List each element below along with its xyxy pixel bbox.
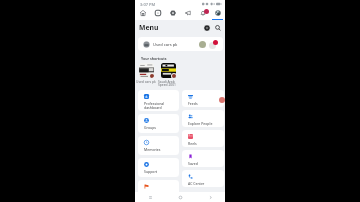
staticText: Used cars pk xyxy=(153,42,178,47)
button[interactable]: Used cars pk xyxy=(139,63,154,83)
button[interactable]: Notifications xyxy=(180,8,195,20)
button[interactable]: Groups xyxy=(138,114,179,133)
button[interactable]: Feeds xyxy=(182,90,224,107)
staticText: Reels xyxy=(188,141,197,146)
button[interactable]: Home xyxy=(135,8,150,20)
staticText: Support xyxy=(144,169,158,174)
staticText: AC Center xyxy=(188,181,205,186)
button[interactable]: Support xyxy=(138,158,179,177)
button[interactable]: Switch profile xyxy=(199,41,206,48)
staticText: Menu xyxy=(139,23,159,32)
staticText: Saved xyxy=(188,161,198,166)
button[interactable]: Home xyxy=(165,192,195,202)
button[interactable]: Marketplace xyxy=(165,8,180,20)
button[interactable]: Profile menu xyxy=(209,40,218,49)
button[interactable]: Back xyxy=(195,192,225,202)
staticText: 3:07 PM xyxy=(140,2,156,7)
staticText: Professional dashboard xyxy=(144,101,165,110)
button[interactable]: Reels xyxy=(182,130,224,147)
staticText: Feeds xyxy=(188,101,198,106)
staticText: Memories xyxy=(144,147,161,152)
staticText: Your shortcuts xyxy=(141,56,167,61)
staticText: Explore People xyxy=(188,121,213,126)
button[interactable]: Saved xyxy=(182,150,224,167)
button[interactable]: Settings xyxy=(203,24,211,32)
button[interactable]: Saudi Arab Speed 2001 xyxy=(161,63,176,87)
button[interactable]: AC Center xyxy=(182,170,224,187)
staticText: Groups xyxy=(144,125,156,130)
staticText: Saudi Arab Speed 2001 xyxy=(158,79,179,87)
button[interactable]: Recents xyxy=(135,192,165,202)
button[interactable]: Memories xyxy=(138,136,179,155)
button[interactable]: Professional dashboard xyxy=(138,90,179,111)
button[interactable]: Search xyxy=(214,24,222,32)
button[interactable]: Explore People xyxy=(182,110,224,127)
button[interactable]: Pages xyxy=(138,180,179,199)
button[interactable]: Profile xyxy=(210,8,225,20)
button[interactable]: Used cars pk xyxy=(138,37,223,51)
button[interactable]: Video xyxy=(150,8,165,20)
button[interactable]: Messages xyxy=(195,8,210,20)
staticText: Used cars pk xyxy=(136,79,157,83)
